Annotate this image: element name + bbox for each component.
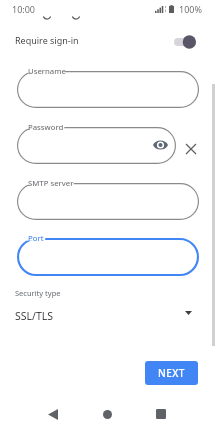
button[interactable]: Clear	[182, 140, 200, 158]
staticText: Require sign-in	[15, 34, 79, 46]
button[interactable]: Show password	[151, 136, 169, 154]
button[interactable]: Home	[93, 400, 121, 428]
staticText: Security type	[15, 288, 61, 298]
button[interactable]: Back	[39, 400, 67, 428]
button[interactable]: Require sign-in	[0, 28, 215, 56]
staticText: 100%	[179, 3, 202, 15]
staticText: Password	[28, 122, 64, 133]
staticText: Username	[28, 66, 66, 77]
button[interactable]: Recent apps	[147, 400, 175, 428]
button[interactable]: Select security type	[180, 305, 196, 321]
staticText: 10:00	[12, 3, 36, 15]
staticText: SSL/TLS	[15, 309, 54, 323]
button[interactable]: NEXT	[145, 361, 198, 385]
staticText: Port	[28, 233, 44, 244]
staticText: SMTP server	[28, 178, 74, 189]
staticText: NEXT	[158, 366, 185, 380]
